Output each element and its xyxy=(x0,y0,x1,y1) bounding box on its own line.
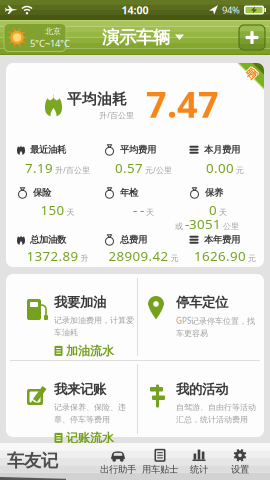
button[interactable]: 记账流水 xyxy=(54,430,114,445)
button[interactable]: 统计 xyxy=(175,445,223,479)
staticText: 我要加油 xyxy=(54,294,106,310)
staticText: 0 xyxy=(209,201,217,219)
staticText: 本月费用 xyxy=(204,144,240,155)
staticText: 升/百公里 xyxy=(99,110,134,121)
staticText: 晒 xyxy=(246,67,257,80)
button[interactable]: 出行助手 xyxy=(94,445,142,479)
staticText: 元/公里 xyxy=(145,165,172,175)
button[interactable]: 选择车辆 xyxy=(102,27,184,48)
staticText: 停车定位 xyxy=(176,294,228,310)
staticText: -3051 xyxy=(185,215,221,233)
button[interactable]: 晒油耗 xyxy=(226,63,264,101)
staticText: 28909.42 xyxy=(108,247,168,265)
staticText: 晒 xyxy=(245,67,256,81)
staticText: 1372.89 xyxy=(26,247,78,265)
staticText: 5°C~14°C xyxy=(30,37,70,49)
button[interactable]: 添加记录 xyxy=(239,25,265,50)
staticText: 自驾游、自由行等活动 汇总，统计活动费用 xyxy=(176,402,256,425)
staticText: 升/百公里 xyxy=(55,165,90,175)
staticText: 升 xyxy=(80,253,88,263)
staticText: 天 xyxy=(66,207,74,217)
staticText: 平均油耗 xyxy=(67,90,127,108)
staticText: 记录保养、保险、违 章、停车等费用 xyxy=(54,402,126,425)
staticText: 年检 xyxy=(120,187,138,198)
staticText: 用车贴士 xyxy=(142,464,178,475)
staticText: 元 xyxy=(236,165,244,175)
staticText: 94% xyxy=(222,4,240,16)
staticText: - - xyxy=(133,201,144,219)
staticText: 统计 xyxy=(190,464,208,475)
staticText: 或 xyxy=(175,221,183,231)
staticText: 加油流水 xyxy=(66,343,114,358)
staticText: 保养 xyxy=(205,187,223,198)
button[interactable]: 我来记账 xyxy=(6,361,137,437)
staticText: 150 xyxy=(40,201,64,219)
staticText: 本年费用 xyxy=(204,234,240,245)
staticText: 公里 xyxy=(223,221,239,231)
staticText: 设置 xyxy=(231,464,249,475)
staticText: 最近油耗 xyxy=(30,144,66,155)
staticText: GPS记录停车位置，找 车更容易 xyxy=(176,315,255,338)
staticText: 7.19 xyxy=(25,159,53,177)
staticText: 记录加油费用，计算爱 车油耗 xyxy=(54,315,134,338)
staticText: 晒 xyxy=(247,67,258,81)
staticText: 元 xyxy=(170,253,178,263)
staticText: 0.00 xyxy=(206,159,234,177)
staticText: 晒 xyxy=(246,67,257,81)
staticText: 0.57 xyxy=(115,159,143,177)
staticText: 晒 xyxy=(246,68,257,81)
staticText: 记账流水 xyxy=(66,430,114,445)
button[interactable]: 我的活动 xyxy=(138,361,264,437)
staticText: 车友记 xyxy=(7,450,58,471)
staticText: 总加油数 xyxy=(30,234,66,245)
button[interactable]: 停车定位 xyxy=(138,274,264,360)
staticText: 我的活动 xyxy=(176,381,228,397)
staticText: 1626.90 xyxy=(194,247,246,265)
staticText: 总费用 xyxy=(120,234,147,245)
staticText: 元 xyxy=(248,253,256,263)
button[interactable]: 加油流水 xyxy=(54,343,114,358)
staticText: 出行助手 xyxy=(100,464,136,475)
button[interactable]: 用车贴士 xyxy=(136,445,184,479)
button[interactable]: 北京天气 5°C~14°C xyxy=(4,23,66,51)
staticText: 演示车辆 xyxy=(102,27,170,48)
button[interactable]: 设置 xyxy=(216,445,264,479)
staticText: 天 xyxy=(146,207,154,217)
staticText: 天 xyxy=(219,207,227,217)
staticText: 保险 xyxy=(33,187,51,198)
staticText: 北京 xyxy=(45,26,61,36)
staticText: 我来记账 xyxy=(54,381,106,397)
staticText: 14:00 xyxy=(121,3,148,17)
staticText: 7.47 xyxy=(146,80,219,128)
staticText: 平均费用 xyxy=(120,144,156,155)
button[interactable]: 我要加油 xyxy=(6,274,137,360)
